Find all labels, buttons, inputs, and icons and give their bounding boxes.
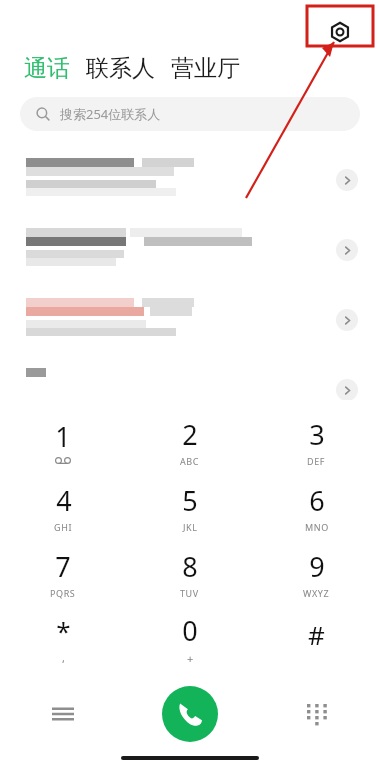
staticText: 8 (182, 548, 198, 585)
staticText: 通话 (24, 54, 70, 83)
button[interactable]: 营业厅 (171, 54, 240, 83)
button[interactable]: 3 (253, 408, 380, 474)
button[interactable]: 6 (253, 474, 380, 540)
button[interactable]: Menu (0, 682, 126, 746)
button[interactable]: 1 (0, 408, 126, 474)
button[interactable]: 7 (0, 540, 126, 606)
staticText: MNO (305, 521, 329, 533)
staticText: 4 (56, 482, 72, 519)
button[interactable] (0, 215, 380, 285)
staticText: + (187, 651, 194, 666)
button[interactable] (0, 355, 380, 425)
button[interactable]: Settings (324, 16, 356, 48)
staticText: 搜索254位联系人 (60, 105, 161, 123)
staticText: JKL (183, 521, 198, 533)
staticText: 2 (182, 416, 198, 453)
staticText: TUV (180, 587, 199, 599)
button[interactable]: Keypad (253, 682, 380, 746)
staticText: PQRS (50, 587, 76, 599)
button[interactable]: 5 (126, 474, 253, 540)
button[interactable]: # (253, 606, 380, 672)
staticText: 9 (309, 548, 325, 585)
staticText: 6 (309, 482, 325, 519)
staticText: 7 (55, 548, 71, 585)
staticText: 1 (55, 418, 71, 455)
staticText: GHI (54, 521, 73, 533)
button[interactable]: * (0, 606, 126, 672)
staticText: 联系人 (86, 54, 155, 83)
staticText: 0 (182, 612, 198, 649)
button[interactable]: 搜索254位联系人 (20, 97, 360, 131)
button[interactable]: 9 (253, 540, 380, 606)
button[interactable] (0, 285, 380, 355)
staticText: WXYZ (303, 587, 330, 599)
button[interactable]: 0 (126, 606, 253, 672)
staticText: 3 (309, 416, 325, 453)
staticText: 营业厅 (171, 54, 240, 83)
staticText: , (62, 650, 66, 665)
button[interactable]: 4 (0, 474, 126, 540)
staticText: 5 (182, 482, 198, 519)
button[interactable] (0, 145, 380, 215)
button[interactable]: Call (162, 686, 218, 742)
staticText: # (308, 617, 325, 652)
staticText: * (56, 613, 71, 648)
staticText: ABC (180, 455, 200, 467)
staticText: DEF (307, 455, 326, 467)
button[interactable]: 8 (126, 540, 253, 606)
button[interactable]: 2 (126, 408, 253, 474)
button[interactable]: 通话 (24, 54, 70, 83)
button[interactable]: 联系人 (86, 54, 155, 83)
